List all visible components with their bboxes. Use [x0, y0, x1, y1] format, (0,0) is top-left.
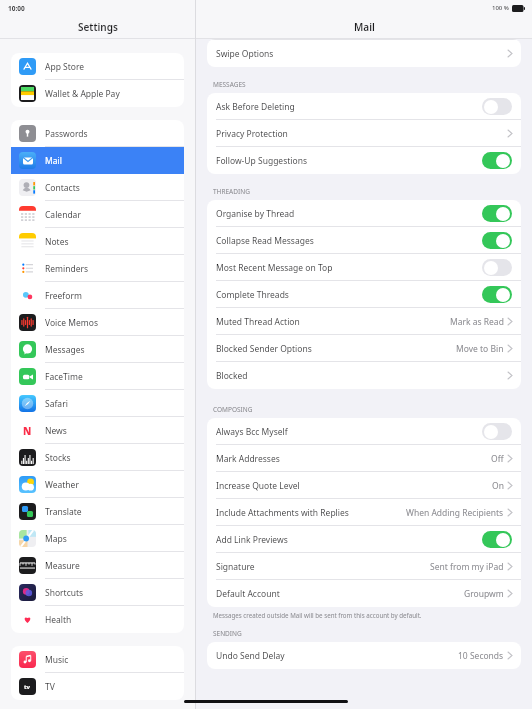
- staticText: Swipe Options: [216, 48, 274, 60]
- staticText: Always Bcc Myself: [216, 426, 288, 438]
- staticText: Stocks: [45, 452, 71, 464]
- staticText: Complete Threads: [216, 289, 289, 301]
- button[interactable]: Safari: [11, 390, 184, 417]
- staticText: 10 Seconds: [458, 650, 504, 662]
- staticText: Off: [491, 453, 504, 465]
- staticText: COMPOSING: [213, 405, 253, 414]
- staticText: Include Attachments with Replies: [216, 507, 349, 519]
- button[interactable]: On: [482, 232, 512, 249]
- staticText: Collapse Read Messages: [216, 235, 314, 247]
- button[interactable]: Maps: [11, 525, 184, 552]
- button[interactable]: Off: [482, 259, 512, 276]
- button[interactable]: Undo Send Delay: [207, 642, 521, 669]
- button[interactable]: Measure: [11, 552, 184, 579]
- button[interactable]: Notes: [11, 228, 184, 255]
- staticText: Muted Thread Action: [216, 316, 300, 328]
- button[interactable]: Complete Threads: [207, 281, 521, 308]
- staticText: Groupwm: [464, 588, 504, 600]
- button[interactable]: Always Bcc Myself: [207, 418, 521, 445]
- button[interactable]: Collapse Read Messages: [207, 227, 521, 254]
- staticText: Notes: [45, 236, 69, 248]
- button[interactable]: Reminders: [11, 255, 184, 282]
- button[interactable]: Freeform: [11, 282, 184, 309]
- button[interactable]: Off: [482, 98, 512, 115]
- button[interactable]: Follow-Up Suggestions: [207, 147, 521, 174]
- staticText: Blocked: [216, 370, 248, 382]
- staticText: THREADING: [213, 187, 250, 196]
- staticText: tv: [24, 683, 31, 691]
- staticText: Safari: [45, 398, 68, 410]
- button[interactable]: Stocks: [11, 444, 184, 471]
- button[interactable]: Most Recent Message on Top: [207, 254, 521, 281]
- staticText: Voice Memos: [45, 317, 99, 329]
- button[interactable]: Default Account: [207, 580, 521, 607]
- button[interactable]: Translate: [11, 498, 184, 525]
- button[interactable]: On: [482, 286, 512, 303]
- button[interactable]: Swipe Options: [207, 40, 521, 67]
- button[interactable]: Increase Quote Level: [207, 472, 521, 499]
- staticText: Blocked Sender Options: [216, 343, 312, 355]
- button[interactable]: FaceTime: [11, 363, 184, 390]
- staticText: Most Recent Message on Top: [216, 262, 333, 274]
- staticText: Settings: [78, 20, 118, 34]
- staticText: TV: [45, 681, 55, 693]
- button[interactable]: Blocked: [207, 362, 521, 389]
- button[interactable]: On: [482, 531, 512, 548]
- staticText: Increase Quote Level: [216, 480, 300, 492]
- button[interactable]: Muted Thread Action: [207, 308, 521, 335]
- button[interactable]: Contacts: [11, 174, 184, 201]
- staticText: Mark Addresses: [216, 453, 280, 465]
- staticText: Calendar: [45, 209, 81, 221]
- button[interactable]: Organise by Thread: [207, 200, 521, 227]
- staticText: News: [45, 425, 67, 437]
- button[interactable]: Add Link Previews: [207, 526, 521, 553]
- staticText: Shortcuts: [45, 587, 84, 599]
- staticText: Organise by Thread: [216, 208, 295, 220]
- button[interactable]: Mail: [11, 147, 184, 174]
- button[interactable]: Include Attachments with Replies: [207, 499, 521, 526]
- button[interactable]: Mark Addresses: [207, 445, 521, 472]
- staticText: Default Account: [216, 588, 280, 600]
- staticText: Sent from my iPad: [430, 561, 504, 573]
- button[interactable]: Shortcuts: [11, 579, 184, 606]
- button[interactable]: Blocked Sender Options: [207, 335, 521, 362]
- button[interactable]: Calendar: [11, 201, 184, 228]
- button[interactable]: N: [11, 417, 184, 444]
- button[interactable]: Health: [11, 606, 184, 633]
- button[interactable]: Weather: [11, 471, 184, 498]
- staticText: Reminders: [45, 263, 89, 275]
- staticText: When Adding Recipients: [406, 507, 504, 519]
- button[interactable]: tv: [11, 673, 184, 700]
- button[interactable]: Ask Before Deleting: [207, 93, 521, 120]
- staticText: Contacts: [45, 182, 80, 194]
- button[interactable]: On: [482, 152, 512, 169]
- staticText: Mark as Read: [450, 316, 504, 328]
- staticText: Translate: [45, 506, 82, 518]
- staticText: On: [492, 480, 504, 492]
- button[interactable]: Music: [11, 646, 184, 673]
- button[interactable]: App Store: [11, 53, 184, 80]
- staticText: Messages created outside Mail will be se…: [213, 611, 422, 619]
- staticText: Weather: [45, 479, 79, 491]
- staticText: Mail: [354, 20, 375, 34]
- staticText: Mail: [45, 155, 62, 167]
- staticText: Follow-Up Suggestions: [216, 155, 307, 167]
- staticText: Privacy Protection: [216, 128, 288, 140]
- staticText: FaceTime: [45, 371, 83, 383]
- button[interactable]: Off: [482, 423, 512, 440]
- staticText: SENDING: [213, 629, 242, 638]
- button[interactable]: Voice Memos: [11, 309, 184, 336]
- button[interactable]: Signature: [207, 553, 521, 580]
- staticText: Freeform: [45, 290, 82, 302]
- staticText: App Store: [45, 61, 85, 73]
- staticText: Add Link Previews: [216, 534, 288, 546]
- button[interactable]: Messages: [11, 336, 184, 363]
- button[interactable]: On: [482, 205, 512, 222]
- button[interactable]: Privacy Protection: [207, 120, 521, 147]
- staticText: Ask Before Deleting: [216, 101, 295, 113]
- button[interactable]: Passwords: [11, 120, 184, 147]
- staticText: Undo Send Delay: [216, 650, 285, 662]
- button[interactable]: Wallet & Apple Pay: [11, 80, 184, 107]
- staticText: N: [23, 424, 32, 438]
- staticText: Messages: [45, 344, 85, 356]
